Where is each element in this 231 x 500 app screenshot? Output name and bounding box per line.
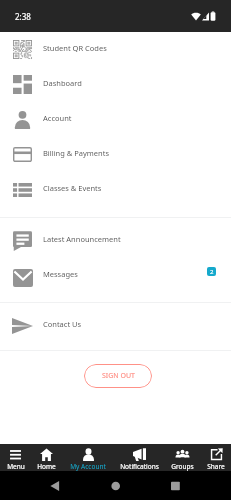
staticText: Contact Us bbox=[43, 319, 218, 329]
button[interactable]: Student QR Codes bbox=[0, 32, 231, 67]
staticText: Messages bbox=[43, 269, 207, 279]
button[interactable]: Dashboard bbox=[0, 67, 231, 102]
button[interactable]: Share bbox=[201, 444, 231, 471]
staticText: My Account bbox=[70, 462, 106, 471]
staticText: 2:38 bbox=[15, 11, 31, 22]
button[interactable]: Account bbox=[0, 102, 231, 137]
staticText: Notifications bbox=[120, 462, 159, 471]
staticText: Home bbox=[37, 462, 56, 471]
button[interactable]: Home bbox=[31, 444, 61, 471]
button[interactable]: SIGN OUT bbox=[84, 364, 152, 388]
button[interactable]: Menu bbox=[0, 444, 31, 471]
button[interactable]: Contact Us bbox=[0, 308, 231, 343]
button[interactable]: Billing & Payments bbox=[0, 137, 231, 172]
button[interactable]: Notifications bbox=[115, 444, 163, 471]
button[interactable]: Classes & Events bbox=[0, 172, 231, 207]
staticText: Billing & Payments bbox=[43, 148, 218, 158]
staticText: SIGN OUT bbox=[102, 371, 135, 381]
staticText: 2 bbox=[210, 268, 214, 276]
button[interactable]: My Account bbox=[61, 444, 115, 471]
button[interactable]: Groups bbox=[163, 444, 201, 471]
staticText: Latest Announcement bbox=[43, 234, 218, 244]
button[interactable]: Messages bbox=[0, 258, 231, 293]
staticText: Dashboard bbox=[43, 78, 218, 88]
staticText: Menu bbox=[7, 462, 25, 471]
staticText: Account bbox=[43, 113, 218, 123]
staticText: Groups bbox=[171, 462, 194, 471]
staticText: Share bbox=[207, 462, 225, 471]
staticText: Classes & Events bbox=[43, 183, 218, 193]
staticText: Student QR Codes bbox=[43, 43, 218, 53]
button[interactable]: Latest Announcement bbox=[0, 223, 231, 258]
